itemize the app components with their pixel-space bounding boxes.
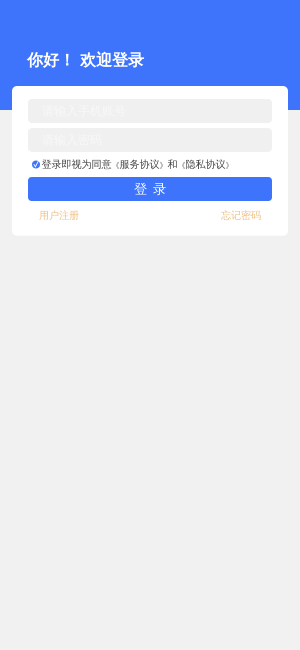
staticText: 登录即视为同意《服务协议》和《隐私协议》 [41, 158, 233, 171]
staticText: 登 录 [134, 181, 166, 197]
staticText: 你好！ 欢迎登录 [27, 50, 144, 70]
button[interactable]: 忘记密码 [221, 209, 261, 222]
button[interactable]: 同意服务协议与隐私协议 [28, 152, 272, 177]
staticText: 用户注册 [39, 209, 79, 222]
button[interactable]: 用户注册 [39, 209, 79, 222]
staticText: 忘记密码 [221, 209, 261, 222]
button[interactable]: 登 录 [28, 177, 272, 201]
